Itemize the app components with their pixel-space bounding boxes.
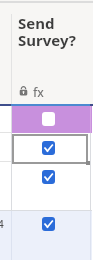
staticText: 4: [0, 217, 4, 231]
button[interactable]: Insert function: [32, 84, 44, 97]
button[interactable]: Protected range: [19, 86, 28, 96]
button[interactable]: [12, 106, 92, 133]
button[interactable]: Checkbox unchecked: [42, 112, 55, 126]
button[interactable]: Send Survey?: [18, 13, 76, 51]
button[interactable]: Checkbox checked: [42, 170, 55, 184]
button[interactable]: Checkbox checked: [42, 217, 55, 231]
staticText: ƒx: [32, 84, 44, 97]
button[interactable]: Checkbox checked: [42, 141, 55, 155]
